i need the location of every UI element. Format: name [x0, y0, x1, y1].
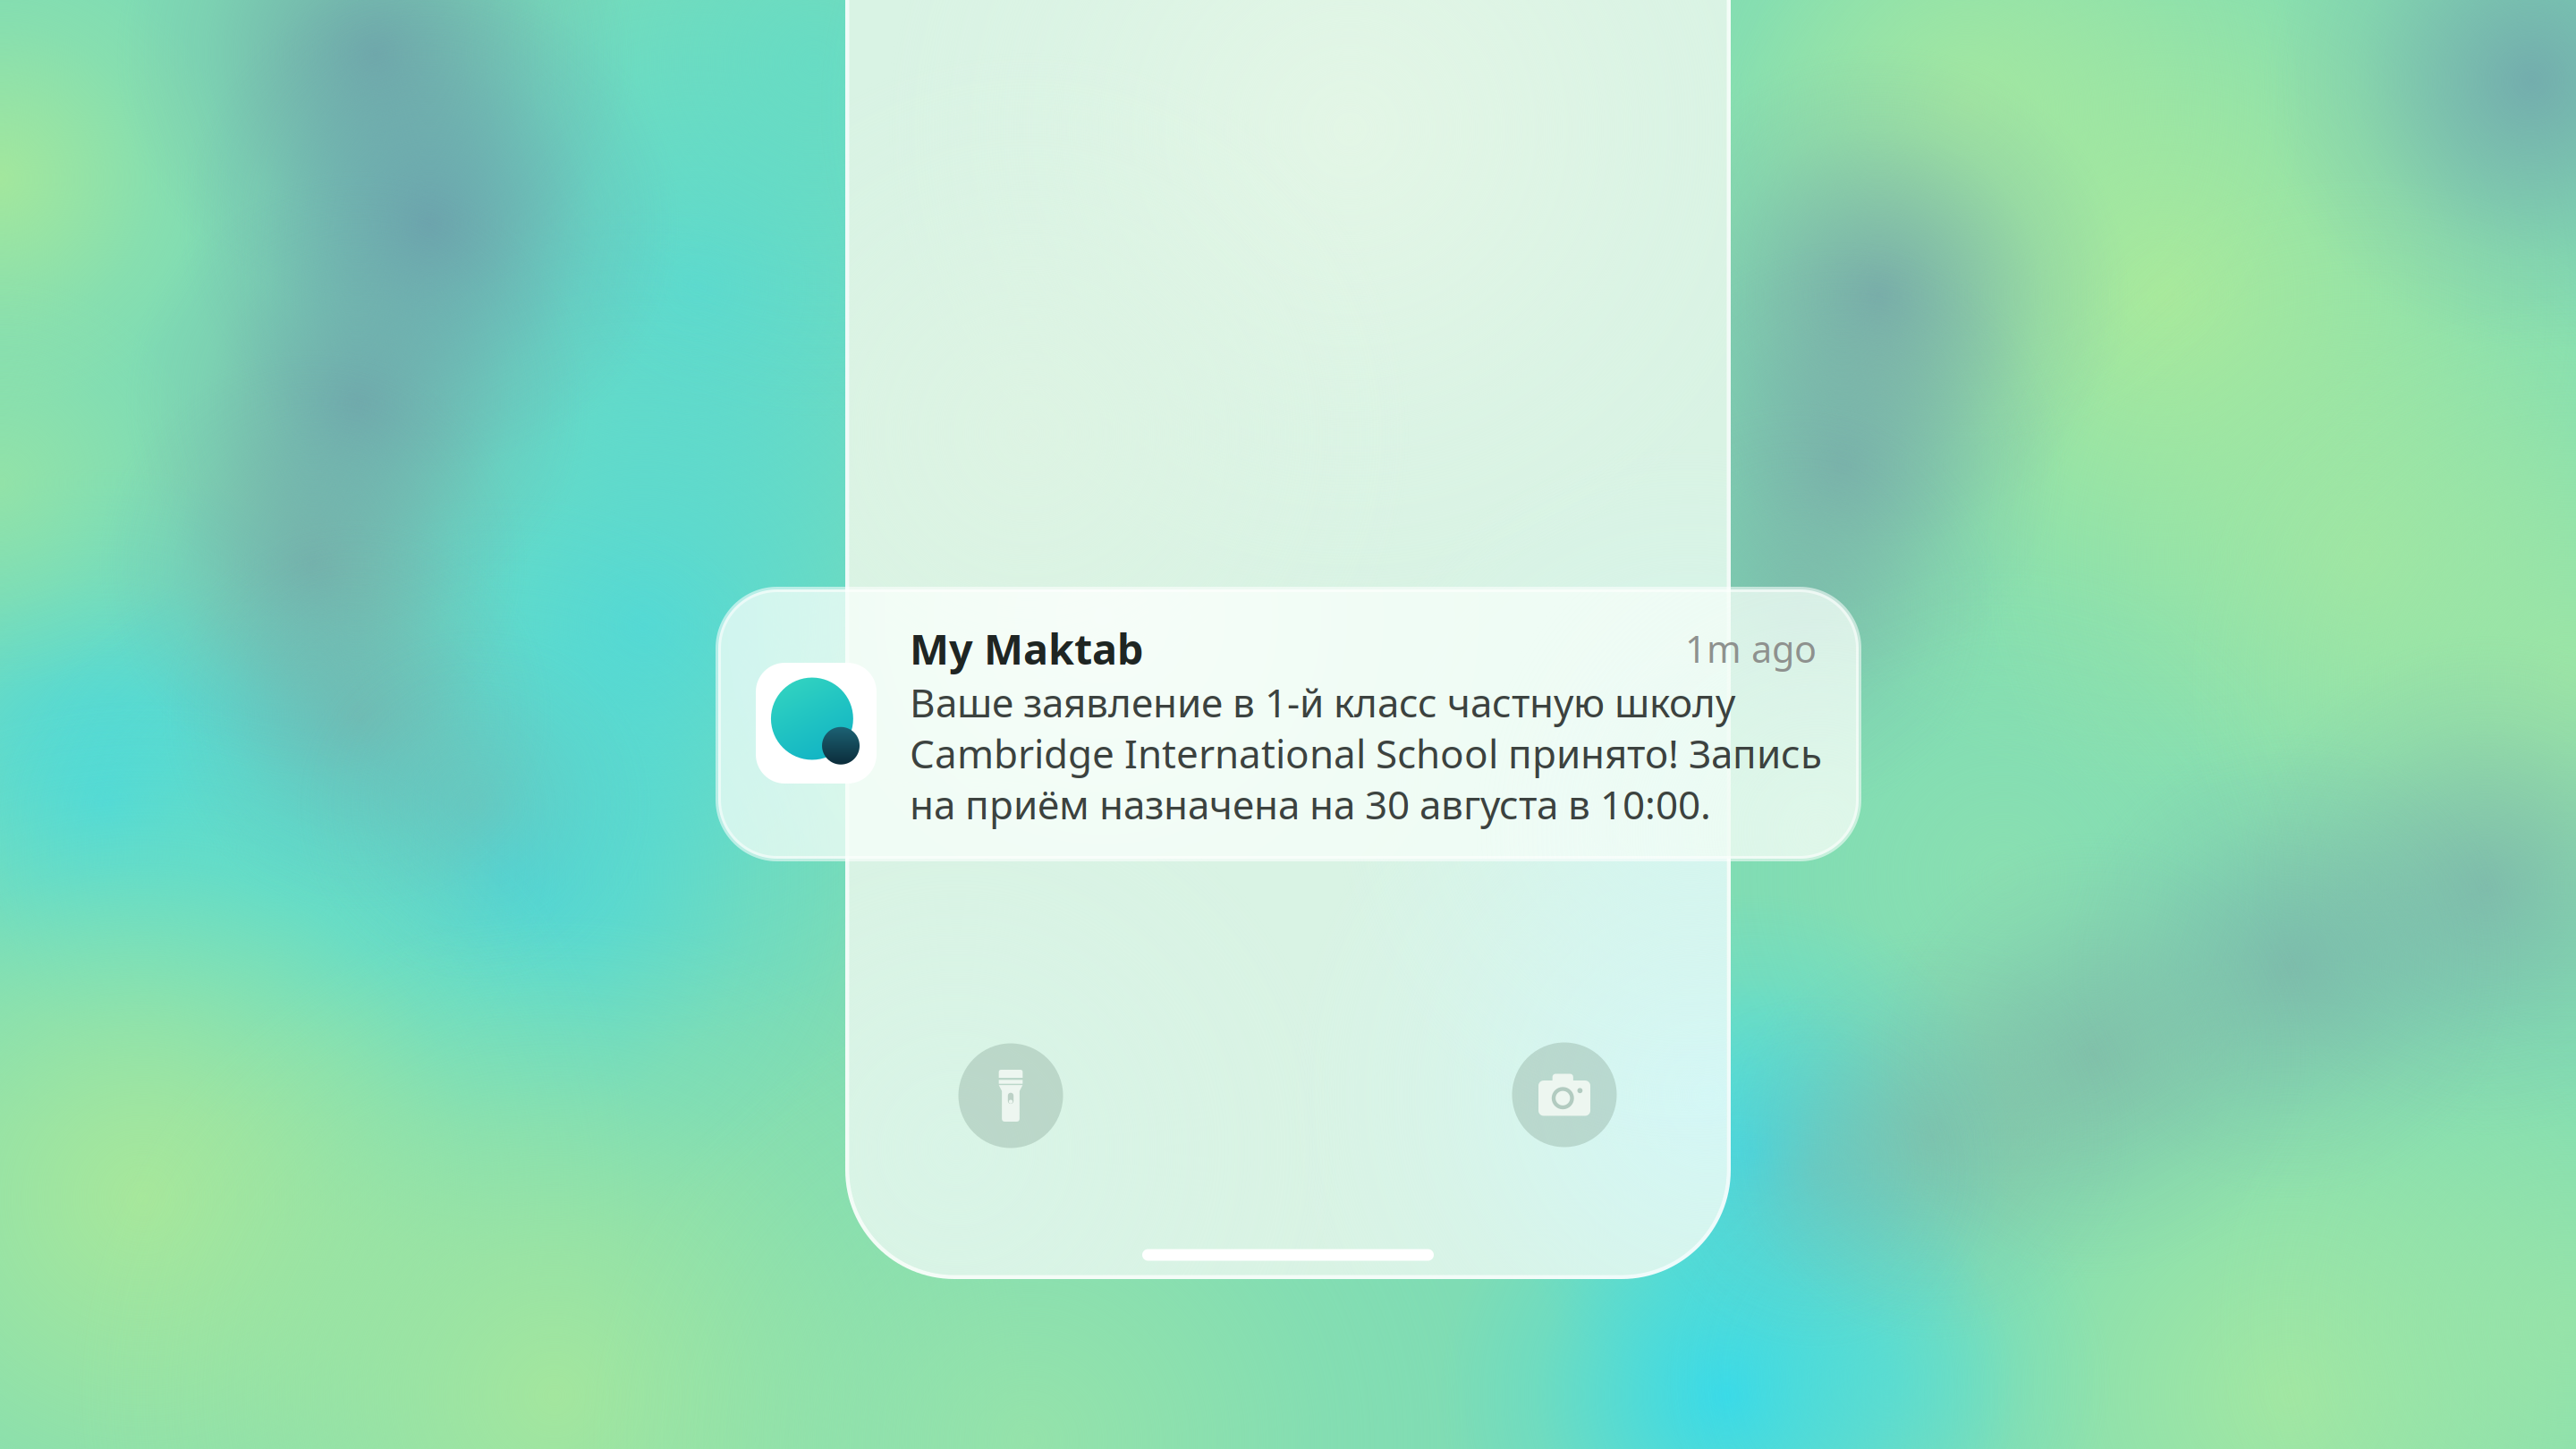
- staticText: Cambridge International School принято! …: [910, 727, 1822, 779]
- staticText: 1m ago: [1685, 624, 1817, 673]
- button[interactable]: Camera: [1512, 1042, 1617, 1147]
- button[interactable]: My Maktab: [718, 589, 1859, 859]
- button[interactable]: Flashlight: [958, 1043, 1063, 1148]
- staticText: My Maktab: [910, 621, 1143, 676]
- staticText: на приём назначена на 30 августа в 10:00…: [910, 778, 1711, 830]
- staticText: Ваше заявление в 1-й класс частную школу: [910, 676, 1735, 728]
